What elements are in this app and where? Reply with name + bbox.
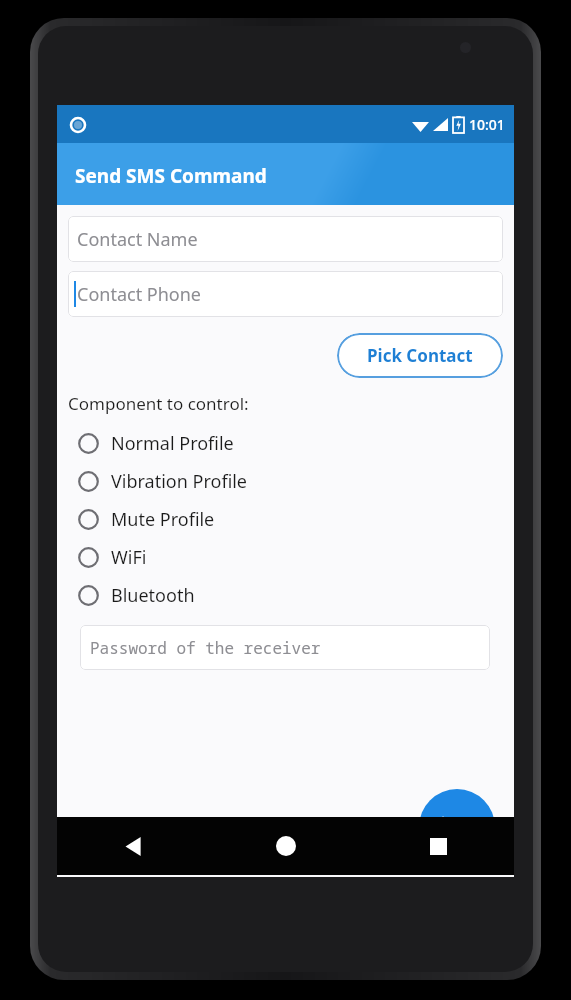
staticText: Contact Name [77,227,198,252]
staticText: Password of the receiver [90,637,321,659]
button[interactable]: Send SMS [419,789,495,865]
staticText: Mute Profile [111,507,215,532]
staticText: Send SMS Command [75,163,267,189]
staticText: Contact Phone [77,282,201,307]
staticText: Component to control: [68,392,249,415]
button[interactable]: Contact Phone [68,271,503,317]
button[interactable]: Mute Profile [57,500,514,538]
staticText: Vibration Profile [111,469,248,494]
button[interactable]: WiFi [57,538,514,576]
staticText: WiFi [111,545,147,570]
button[interactable]: Back [57,817,210,875]
staticText: 10:01 [469,115,505,134]
button[interactable]: Pick Contact [337,333,503,378]
button[interactable]: Recent apps [362,817,514,875]
staticText: Bluetooth [111,583,195,608]
staticText: Normal Profile [111,431,234,456]
button[interactable]: Contact Name [68,216,503,262]
button[interactable]: Bluetooth [57,576,514,614]
staticText: Pick Contact [367,344,473,367]
button[interactable]: Home [210,817,362,875]
button[interactable]: Normal Profile [57,424,514,462]
button[interactable]: Vibration Profile [57,462,514,500]
button[interactable]: Password of the receiver [80,625,490,670]
